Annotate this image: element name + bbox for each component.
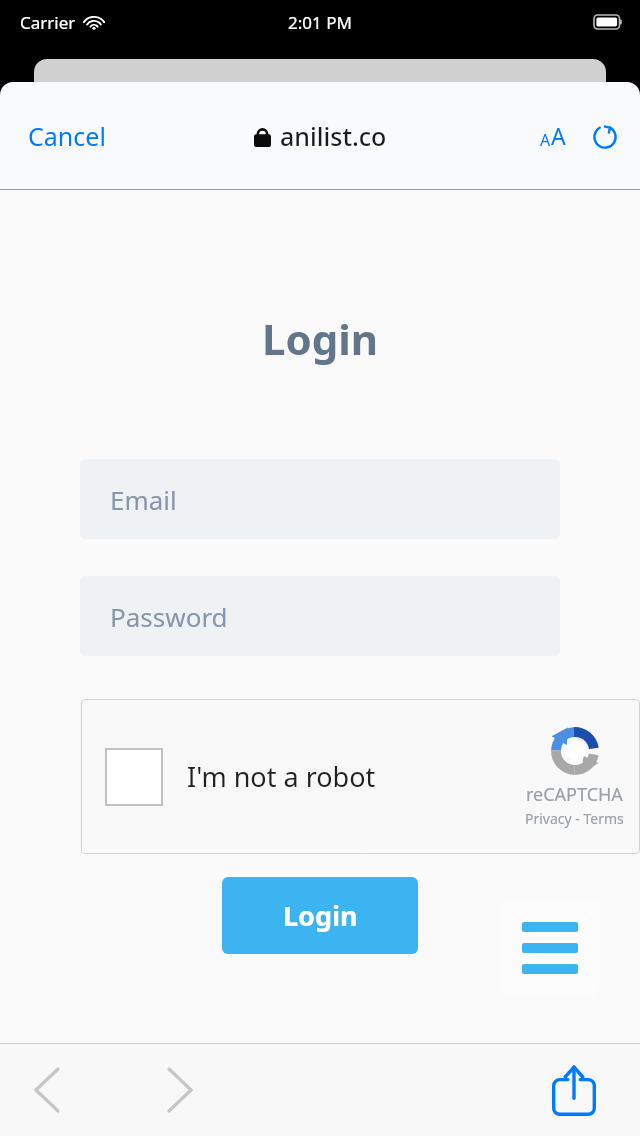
button[interactable]: Email (80, 459, 560, 539)
staticText: reCAPTCHA (526, 782, 623, 807)
staticText: A (551, 120, 566, 151)
staticText: Login (0, 310, 640, 367)
staticText: Privacy - Terms (525, 809, 624, 828)
staticText: Login (283, 897, 358, 934)
staticText: Cancel (28, 119, 106, 153)
staticText: Carrier (20, 11, 76, 34)
button[interactable]: Login (222, 877, 418, 954)
staticText: anilist.co (280, 119, 387, 153)
button[interactable]: I'm not a robot (81, 699, 640, 854)
button[interactable]: Reload (584, 115, 626, 157)
staticText: Email (110, 482, 177, 517)
button[interactable]: Forward (155, 1055, 205, 1125)
button[interactable]: Cancel (14, 113, 120, 159)
button[interactable]: anilist.co (244, 115, 397, 157)
staticText: Password (110, 599, 228, 634)
button[interactable]: Menu (500, 900, 600, 996)
staticText: A (540, 129, 551, 151)
staticText: 2:01 PM (288, 11, 352, 34)
button[interactable]: Share (546, 1058, 602, 1122)
button[interactable]: Password (80, 576, 560, 656)
staticText: I'm not a robot (187, 758, 376, 795)
button[interactable]: Back (22, 1055, 72, 1125)
button[interactable]: Text size (532, 114, 574, 157)
